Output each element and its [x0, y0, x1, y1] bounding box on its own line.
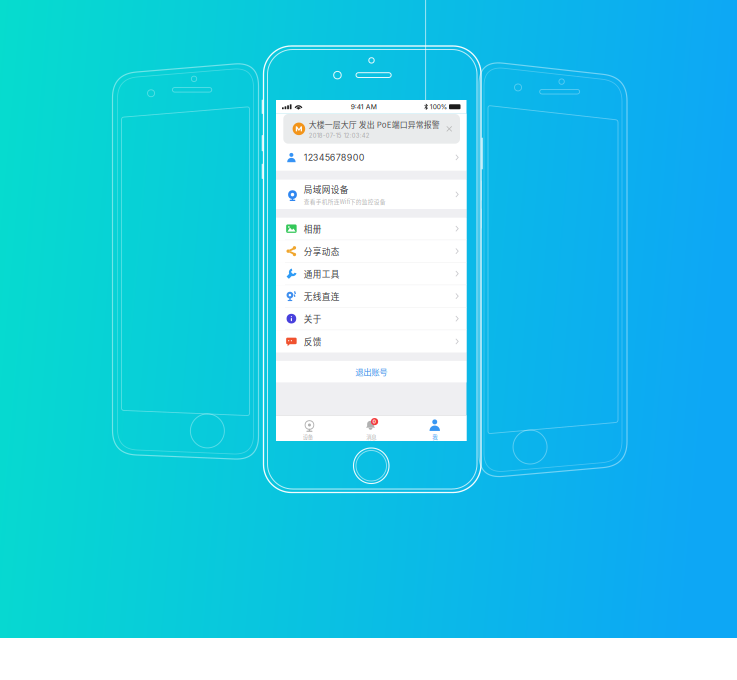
button[interactable]: 退出账号 — [276, 361, 466, 382]
staticText: 我 — [432, 433, 437, 441]
staticText: 设备 — [303, 433, 313, 441]
staticText: 大楼一层大厅 发出 PoE端口异常报警 — [309, 118, 440, 130]
button[interactable]: 局域网设备 — [276, 180, 466, 209]
staticText: 2018-07-15 12:03:42 — [309, 132, 370, 139]
button[interactable]: 无线直连 — [276, 285, 466, 308]
button[interactable]: 0 — [339, 416, 403, 441]
staticText: 100% — [430, 103, 447, 111]
button[interactable]: 通用工具 — [276, 263, 466, 285]
button[interactable]: 关于 — [276, 308, 466, 330]
staticText: 关于 — [304, 312, 322, 325]
button[interactable]: 反馈 — [276, 330, 466, 353]
staticText: 反馈 — [304, 335, 322, 348]
staticText: 退出账号 — [355, 366, 387, 378]
staticText: 9:41 AM — [351, 103, 377, 111]
staticText: 0 — [373, 418, 377, 425]
staticText: 消息 — [366, 433, 376, 441]
staticText: 相册 — [304, 222, 322, 235]
button[interactable]: 12345678900 — [276, 144, 466, 171]
staticText: 查看手机所连Wifi下的监控设备 — [304, 197, 386, 206]
staticText: 分享动态 — [304, 245, 340, 257]
button[interactable]: 相册 — [276, 218, 466, 240]
staticText: 12345678900 — [304, 152, 365, 163]
button[interactable]: 分享动态 — [276, 240, 466, 263]
staticText: 局域网设备 — [304, 183, 349, 196]
staticText: 通用工具 — [304, 267, 340, 280]
button[interactable]: 大楼一层大厅 发出 PoE端口异常报警 — [283, 114, 460, 144]
button[interactable]: 设备 — [276, 416, 339, 441]
staticText: 无线直连 — [304, 290, 340, 302]
button[interactable]: 我 — [403, 416, 466, 441]
